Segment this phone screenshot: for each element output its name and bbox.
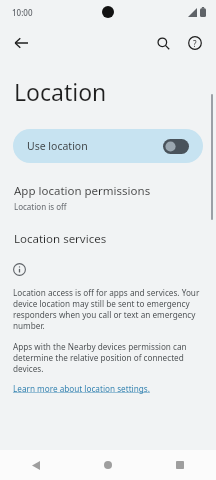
button[interactable]: Location services xyxy=(0,229,216,249)
staticText: Apps with the Nearby devices permission … xyxy=(13,341,200,374)
button[interactable]: Use location xyxy=(13,129,203,163)
staticText: Location xyxy=(14,76,107,107)
button[interactable]: Back xyxy=(0,450,72,480)
staticText: Location is off xyxy=(14,201,67,212)
button[interactable]: Help xyxy=(180,28,210,58)
staticText: App location permissions xyxy=(14,183,151,199)
button[interactable]: Search xyxy=(148,28,178,58)
staticText: Use location xyxy=(27,139,163,153)
button[interactable]: Recent apps xyxy=(144,450,216,480)
button[interactable]: App location permissions xyxy=(0,181,216,214)
staticText: Location access is off for apps and serv… xyxy=(13,287,200,331)
button[interactable]: Home xyxy=(72,450,144,480)
staticText: ? xyxy=(193,38,197,49)
button[interactable]: Back xyxy=(6,28,36,58)
button[interactable]: Learn more about location settings. xyxy=(13,383,150,394)
staticText: 10:00 xyxy=(12,7,33,18)
